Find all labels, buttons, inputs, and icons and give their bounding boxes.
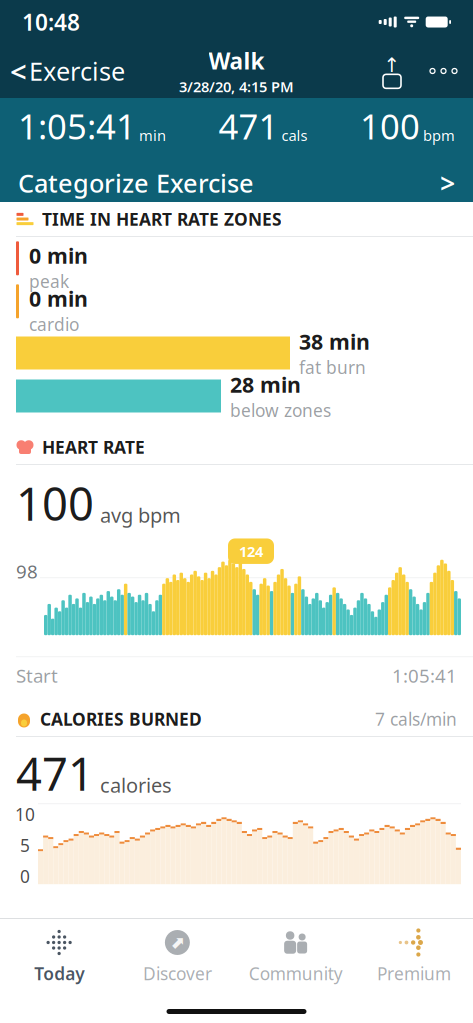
button[interactable]: Today	[0, 919, 118, 991]
staticText: 100	[360, 103, 420, 149]
button[interactable]: More options	[414, 44, 473, 98]
staticText: avg bpm	[100, 502, 181, 528]
staticText: cardio	[29, 313, 79, 336]
staticText: fat burn	[299, 356, 366, 379]
staticText: 7 cals/min	[375, 707, 457, 730]
staticText: 3/28/20, 4:15 PM	[179, 77, 294, 96]
staticText: below zones	[230, 399, 331, 422]
staticText: CALORIES BURNED	[40, 707, 202, 730]
staticText: 10	[15, 803, 35, 826]
staticText: HEART RATE	[42, 435, 145, 458]
staticText: peak	[29, 270, 69, 293]
staticText: Start	[16, 663, 58, 688]
staticText: bpm	[423, 125, 455, 145]
staticText: min	[139, 125, 166, 145]
staticText: calories	[100, 772, 172, 798]
staticText: 5	[20, 834, 30, 857]
staticText: 100	[16, 473, 94, 533]
staticText: Today	[34, 962, 84, 985]
staticText: 124	[239, 541, 263, 561]
button[interactable]: ⬈	[118, 919, 236, 991]
button[interactable]: Premium	[355, 919, 473, 991]
staticText: 98	[16, 559, 38, 584]
button[interactable]: Categorize Exercise	[0, 157, 473, 209]
button[interactable]: Share	[370, 44, 414, 98]
staticText: 471	[16, 743, 94, 803]
staticText: TIME IN HEART RATE ZONES	[42, 207, 282, 230]
staticText: Exercise	[29, 54, 125, 88]
staticText: 1:05:41	[392, 663, 457, 688]
staticText: >	[440, 165, 455, 201]
staticText: 28 min	[230, 370, 301, 399]
button[interactable]: Community	[236, 919, 355, 991]
staticText: ↑	[383, 54, 400, 76]
staticText: cals	[281, 125, 307, 145]
staticText: Discover	[143, 962, 212, 985]
staticText: <	[10, 51, 27, 90]
staticText: 471	[218, 103, 278, 149]
staticText: 0	[20, 865, 30, 888]
staticText: Walk	[208, 46, 264, 76]
staticText: 0 min	[29, 241, 88, 270]
staticText: 38 min	[299, 327, 370, 356]
staticText: ⬈	[170, 933, 185, 952]
staticText: Categorize Exercise	[18, 166, 254, 200]
staticText: Community	[249, 962, 343, 985]
button[interactable]: <	[0, 44, 135, 98]
staticText: Premium	[377, 962, 451, 985]
staticText: 10:48	[22, 7, 80, 37]
staticText: 0 min	[29, 284, 88, 313]
staticText: 1:05:41	[18, 103, 136, 149]
